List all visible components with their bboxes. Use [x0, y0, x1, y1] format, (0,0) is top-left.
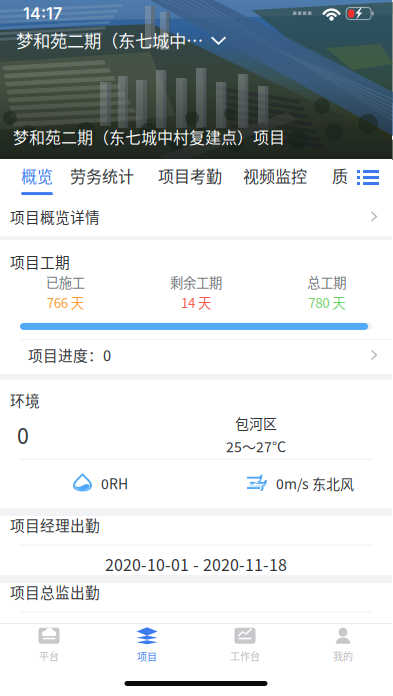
staticText: 梦和苑二期（东七城中…: [16, 27, 203, 53]
staticText: 项目总监出勤: [10, 581, 100, 602]
button[interactable]: 质: [324, 159, 356, 197]
staticText: 项目工期: [10, 251, 70, 272]
staticText: 2020-10-01 - 2020-11-18: [105, 552, 287, 576]
staticText: 25～27°C: [226, 436, 286, 456]
staticText: 平台: [39, 649, 59, 663]
staticText: 环境: [10, 389, 40, 411]
staticText: 0m/s 东北风: [276, 473, 354, 493]
staticText: 概览: [21, 164, 53, 187]
staticText: 14 天: [181, 293, 211, 312]
button[interactable]: 项目概览详情: [0, 197, 392, 236]
staticText: 项目经理出勤: [10, 514, 100, 535]
staticText: 766 天: [47, 293, 84, 312]
staticText: 780 天: [308, 293, 345, 312]
staticText: 项目概览详情: [10, 206, 100, 227]
staticText: 质: [332, 164, 348, 187]
staticText: 我的: [333, 649, 353, 663]
staticText: 项目: [137, 649, 157, 664]
button[interactable]: 项目进度：0: [0, 340, 392, 370]
staticText: 项目考勤: [158, 164, 222, 187]
staticText: 0RH: [101, 473, 128, 493]
staticText: 项目进度：0: [28, 344, 111, 365]
button[interactable]: 我的: [294, 624, 392, 670]
staticText: 包河区: [235, 413, 277, 433]
staticText: 14:17: [23, 4, 62, 23]
button[interactable]: 项目考勤: [158, 159, 222, 197]
staticText: 已施工: [46, 272, 85, 292]
button[interactable]: 视频监控: [243, 159, 307, 197]
staticText: 视频监控: [243, 164, 307, 187]
staticText: 梦和苑二期（东七城中村复建点）项目: [13, 125, 285, 148]
staticText: 剩余工期: [170, 272, 222, 292]
button[interactable]: 项目: [98, 624, 196, 670]
staticText: 2020-10-01 - 2020-11-18: [105, 619, 287, 643]
staticText: 工作台: [230, 649, 260, 663]
button[interactable]: 概览: [21, 159, 53, 197]
staticText: 0: [17, 419, 29, 450]
button[interactable]: 劳务统计: [70, 159, 134, 197]
staticText: 总工期: [307, 272, 346, 292]
staticText: 劳务统计: [70, 164, 134, 187]
button[interactable]: 工作台: [196, 624, 294, 670]
button[interactable]: 平台: [0, 624, 98, 670]
button[interactable]: 全部栏目: [357, 159, 379, 197]
